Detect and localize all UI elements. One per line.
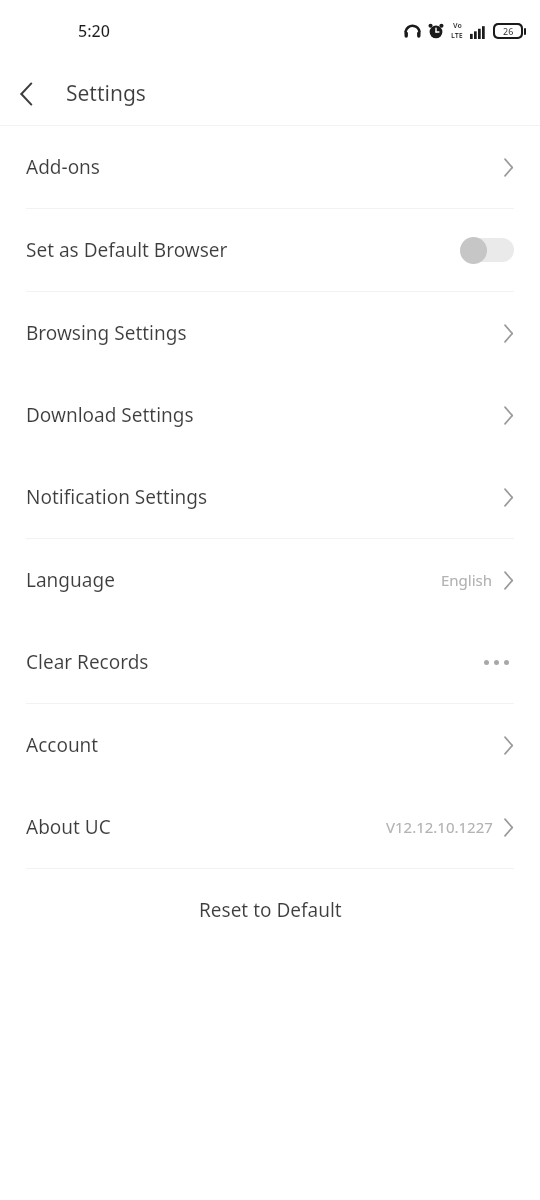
button[interactable]: Account [0,704,540,786]
button[interactable]: Set as Default Browser toggle [458,234,514,266]
staticText: LTE [451,31,463,41]
staticText: 26 [503,25,514,37]
button[interactable]: Clear Records [0,621,540,703]
staticText: Notification Settings [26,484,503,510]
staticText: Add-ons [26,154,503,180]
staticText: About UC [26,814,386,840]
button[interactable]: Back [0,68,52,120]
staticText: Reset to Default [199,897,342,923]
button[interactable]: About UC [0,786,540,868]
button[interactable]: Browsing Settings [0,292,540,374]
staticText: Set as Default Browser [26,237,458,263]
staticText: V12.12.10.1227 [386,817,493,837]
button[interactable]: Download Settings [0,374,540,456]
staticText: Clear Records [26,649,478,675]
staticText: English [441,570,493,590]
button[interactable]: Reset to Default [0,869,540,951]
button[interactable]: Notification Settings [0,456,540,538]
button[interactable]: Add-ons [0,126,540,208]
staticText: 5:20 [78,20,110,42]
staticText: Download Settings [26,402,503,428]
staticText: Settings [66,79,146,108]
staticText: Vo [453,21,462,31]
button[interactable]: Clear Records options [478,652,514,672]
button[interactable]: Set as Default Browser [0,209,540,291]
staticText: Language [26,567,441,593]
staticText: Account [26,732,503,758]
staticText: Browsing Settings [26,320,503,346]
button[interactable]: Language [0,539,540,621]
